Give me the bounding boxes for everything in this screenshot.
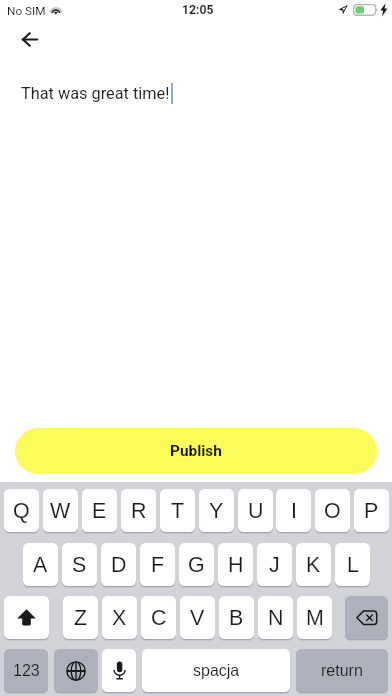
- staticText: A: [33, 553, 48, 577]
- button[interactable]: C: [141, 596, 176, 639]
- staticText: N: [268, 606, 284, 630]
- button[interactable]: D: [101, 543, 136, 586]
- button[interactable]: V: [180, 596, 215, 639]
- button[interactable]: Shift: [4, 596, 49, 639]
- staticText: return: [321, 662, 363, 680]
- button[interactable]: T: [160, 489, 195, 532]
- button[interactable]: Backspace: [345, 596, 388, 639]
- staticText: P: [364, 499, 379, 523]
- button[interactable]: Dictate: [102, 649, 136, 692]
- staticText: S: [72, 553, 87, 577]
- staticText: L: [347, 553, 359, 577]
- button[interactable]: Publish: [15, 428, 377, 474]
- staticText: H: [228, 553, 244, 577]
- button[interactable]: S: [62, 543, 97, 586]
- button[interactable]: F: [140, 543, 175, 586]
- staticText: C: [151, 606, 167, 630]
- staticText: R: [131, 499, 147, 523]
- staticText: Q: [13, 499, 30, 523]
- staticText: 12:05: [182, 3, 214, 17]
- staticText: No SIM: [7, 4, 46, 18]
- staticText: I: [291, 499, 297, 523]
- button[interactable]: O: [315, 489, 350, 532]
- button[interactable]: Y: [199, 489, 234, 532]
- button[interactable]: 123: [4, 649, 48, 692]
- staticText: G: [188, 553, 205, 577]
- staticText: Z: [74, 606, 88, 630]
- staticText: Y: [209, 499, 224, 523]
- button[interactable]: H: [218, 543, 253, 586]
- button[interactable]: U: [238, 489, 273, 532]
- staticText: U: [248, 499, 264, 523]
- staticText: M: [306, 606, 324, 630]
- button[interactable]: W: [43, 489, 78, 532]
- staticText: 123: [13, 662, 40, 680]
- button[interactable]: M: [297, 596, 332, 639]
- staticText: B: [229, 606, 244, 630]
- staticText: W: [50, 499, 71, 523]
- button[interactable]: Z: [63, 596, 98, 639]
- staticText: V: [190, 606, 205, 630]
- button[interactable]: N: [258, 596, 293, 639]
- button[interactable]: J: [257, 543, 292, 586]
- button[interactable]: Q: [4, 489, 39, 532]
- staticText: X: [112, 606, 127, 630]
- button[interactable]: Back: [14, 25, 46, 54]
- button[interactable]: G: [179, 543, 214, 586]
- button[interactable]: return: [296, 649, 388, 692]
- staticText: T: [171, 499, 185, 523]
- staticText: F: [151, 553, 165, 577]
- button[interactable]: X: [102, 596, 137, 639]
- button[interactable]: P: [354, 489, 389, 532]
- button[interactable]: B: [219, 596, 254, 639]
- button[interactable]: R: [121, 489, 156, 532]
- staticText: That was great time!: [21, 84, 170, 103]
- staticText: spacja: [193, 662, 240, 680]
- button[interactable]: L: [335, 543, 370, 586]
- button[interactable]: I: [276, 489, 311, 532]
- button[interactable]: spacja: [142, 649, 290, 692]
- staticText: E: [92, 499, 107, 523]
- staticText: Publish: [170, 442, 222, 460]
- button[interactable]: Next keyboard: [54, 649, 98, 692]
- button[interactable]: K: [296, 543, 331, 586]
- staticText: D: [111, 553, 127, 577]
- staticText: K: [306, 553, 321, 577]
- staticText: J: [269, 553, 280, 577]
- staticText: O: [324, 499, 341, 523]
- button[interactable]: A: [23, 543, 58, 586]
- button[interactable]: E: [82, 489, 117, 532]
